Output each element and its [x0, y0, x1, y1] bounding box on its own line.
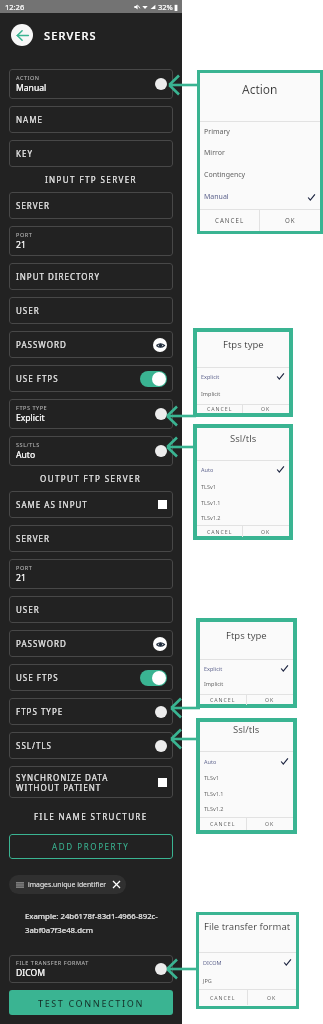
- button[interactable]: JPG: [199, 973, 296, 987]
- staticText: SYNCHRONIZE DATA WITHOUT PATIENT: [16, 772, 147, 793]
- button[interactable]: Implicit: [200, 676, 293, 690]
- staticText: Auto: [204, 758, 217, 765]
- button[interactable]: FTPS TYPE: [9, 698, 173, 725]
- button[interactable]: TLSv1.1: [197, 495, 289, 509]
- staticText: KEY: [16, 148, 33, 159]
- button[interactable]: CANCEL: [200, 817, 246, 830]
- button[interactable]: NAME: [9, 106, 173, 133]
- staticText: TLSv1: [201, 483, 216, 490]
- staticText: TLSv1.1: [201, 499, 221, 506]
- staticText: PASSWORD: [16, 339, 67, 350]
- button[interactable]: USER: [9, 297, 173, 324]
- button[interactable]: Open options: [155, 706, 167, 718]
- button[interactable]: OK: [248, 989, 296, 1005]
- staticText: FILE NAME STRUCTURE: [34, 811, 148, 822]
- button[interactable]: images.unique identifier: [9, 875, 126, 894]
- button[interactable]: TLSv1: [200, 770, 293, 784]
- staticText: SERVER: [16, 200, 51, 211]
- button[interactable]: SYNCHRONIZE DATA WITHOUT PATIENT: [9, 766, 173, 798]
- staticText: Ssl/tls: [230, 432, 257, 445]
- button[interactable]: SAME AS INPUT: [9, 491, 173, 518]
- button[interactable]: USER: [9, 596, 173, 623]
- button[interactable]: Use FTPS toggle: [140, 670, 167, 686]
- button[interactable]: CANCEL: [197, 404, 242, 413]
- button[interactable]: Primary: [200, 125, 320, 139]
- staticText: NAME: [16, 114, 43, 125]
- button[interactable]: ACTION: [9, 69, 173, 99]
- button[interactable]: Open options: [155, 408, 167, 420]
- button[interactable]: USE FTPS: [9, 365, 173, 392]
- button[interactable]: KEY: [9, 140, 173, 167]
- button[interactable]: CANCEL: [197, 525, 242, 537]
- button[interactable]: TLSv1: [197, 479, 289, 493]
- button[interactable]: INPUT DIRECTORY: [9, 263, 173, 290]
- button[interactable]: Open options: [155, 78, 167, 90]
- button[interactable]: PASSWORD: [9, 331, 173, 358]
- button[interactable]: Show password: [153, 338, 167, 352]
- staticText: OK: [265, 820, 275, 827]
- button[interactable]: OK: [260, 209, 320, 231]
- button[interactable]: PORT: [9, 559, 173, 589]
- button[interactable]: Auto: [197, 462, 289, 476]
- button[interactable]: OK: [243, 404, 289, 413]
- button[interactable]: Auto: [200, 754, 293, 768]
- button[interactable]: Back: [11, 24, 33, 46]
- button[interactable]: Explicit: [197, 369, 289, 383]
- staticText: Manual: [204, 192, 229, 202]
- button[interactable]: Use FTPS toggle: [140, 371, 167, 387]
- button[interactable]: SSL/TLS: [9, 732, 173, 759]
- button[interactable]: FTPS TYPE: [9, 399, 173, 429]
- button[interactable]: Mirror: [200, 146, 320, 160]
- button[interactable]: Show password: [153, 637, 167, 651]
- staticText: OK: [261, 405, 271, 412]
- button[interactable]: Manual: [200, 190, 320, 204]
- button[interactable]: CANCEL: [200, 694, 246, 705]
- button[interactable]: DICOM: [199, 955, 296, 969]
- staticText: USE FTPS: [16, 373, 59, 384]
- staticText: Explicit: [204, 665, 223, 672]
- button[interactable]: ADD PROPERTY: [9, 834, 173, 859]
- staticText: TLSv1.2: [201, 514, 221, 521]
- staticText: TLSv1.1: [204, 790, 224, 797]
- button[interactable]: Open options: [155, 445, 167, 457]
- staticText: Primary: [204, 127, 230, 137]
- button[interactable]: SERVER: [9, 192, 173, 219]
- button[interactable]: SSL/TLS: [9, 436, 173, 466]
- staticText: DICOM: [203, 959, 222, 966]
- staticText: JPG: [203, 977, 212, 984]
- button[interactable]: FILE TRANSFER FORMAT: [9, 955, 173, 983]
- button[interactable]: USE FTPS: [9, 664, 173, 691]
- button[interactable]: PORT: [9, 226, 173, 256]
- button[interactable]: Explicit: [200, 661, 293, 675]
- staticText: PORT: [16, 564, 33, 571]
- button[interactable]: SERVER: [9, 525, 173, 552]
- staticText: TLSv1: [204, 774, 219, 781]
- staticText: ACTION: [16, 74, 40, 81]
- button[interactable]: Contingency: [200, 168, 320, 182]
- button[interactable]: OK: [247, 817, 293, 830]
- staticText: OK: [265, 696, 275, 703]
- staticText: OK: [261, 528, 271, 535]
- button[interactable]: Open options: [155, 740, 167, 752]
- button[interactable]: Open options: [155, 963, 167, 975]
- staticText: 21: [16, 572, 26, 584]
- staticText: FILE TRANSFER FORMAT: [16, 959, 89, 966]
- staticText: CANCEL: [210, 696, 236, 703]
- button[interactable]: OK: [247, 694, 293, 705]
- staticText: SERVERS: [44, 28, 97, 43]
- button[interactable]: PASSWORD: [9, 630, 173, 657]
- button[interactable]: TLSv1.1: [200, 786, 293, 800]
- button[interactable]: CANCEL: [199, 989, 247, 1005]
- button[interactable]: TEST CONNECTION: [9, 990, 173, 1015]
- button[interactable]: CANCEL: [200, 209, 259, 231]
- staticText: SSL/TLS: [16, 441, 40, 448]
- button[interactable]: Implicit: [197, 386, 289, 400]
- button[interactable]: TLSv1.2: [197, 510, 289, 524]
- staticText: INPUT FTP SERVER: [45, 174, 137, 185]
- button[interactable]: OK: [243, 525, 289, 537]
- button[interactable]: TLSv1.2: [200, 801, 293, 815]
- staticText: Auto: [201, 466, 214, 473]
- staticText: Contingency: [204, 170, 246, 180]
